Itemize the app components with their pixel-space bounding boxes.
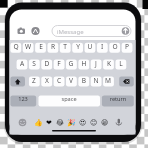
button[interactable]: 🎉 <box>66 118 76 128</box>
staticText: T <box>45 42 85 51</box>
staticText: return <box>98 95 138 103</box>
staticText: S <box>14 59 54 68</box>
staticText: J <box>76 59 116 68</box>
staticText: 😁 <box>101 119 109 127</box>
staticText: D <box>27 59 67 68</box>
button[interactable]: 😂 <box>55 118 65 128</box>
staticText: G <box>51 59 91 68</box>
staticText: A <box>2 59 42 68</box>
staticText: ❤️ <box>46 119 52 127</box>
staticText: H <box>64 59 104 68</box>
staticText: K <box>89 59 129 68</box>
staticText: C <box>39 76 79 85</box>
staticText: E <box>21 42 61 51</box>
staticText: 123 <box>3 95 43 103</box>
staticText: space <box>49 95 89 103</box>
button[interactable]: 😁 <box>100 118 110 128</box>
staticText: iMessage <box>57 28 84 36</box>
button[interactable]: 😊 <box>89 118 99 128</box>
staticText: 😍 <box>79 119 87 127</box>
staticText: R <box>33 42 73 51</box>
button[interactable]: ❤️ <box>44 118 54 128</box>
button[interactable]: 👍 <box>33 118 43 128</box>
staticText: V <box>51 76 91 85</box>
staticText: U <box>70 42 110 51</box>
staticText: Q <box>0 42 36 51</box>
staticText: 😊 <box>90 119 98 127</box>
staticText: B <box>64 76 104 85</box>
staticText: I <box>82 42 122 51</box>
staticText: Y <box>58 42 98 51</box>
staticText: M <box>88 76 128 85</box>
staticText: F <box>39 59 79 68</box>
staticText: O <box>95 42 135 51</box>
staticText: 👍 <box>34 119 43 127</box>
staticText: P <box>107 42 147 51</box>
staticText: Z <box>14 76 54 85</box>
staticText: L <box>101 59 141 68</box>
staticText: 🎉 <box>67 119 76 127</box>
staticText: 😂 <box>56 119 65 127</box>
staticText: N <box>76 76 116 85</box>
staticText: X <box>27 76 67 85</box>
staticText: W <box>8 42 48 51</box>
button[interactable]: 😍 <box>78 118 88 128</box>
